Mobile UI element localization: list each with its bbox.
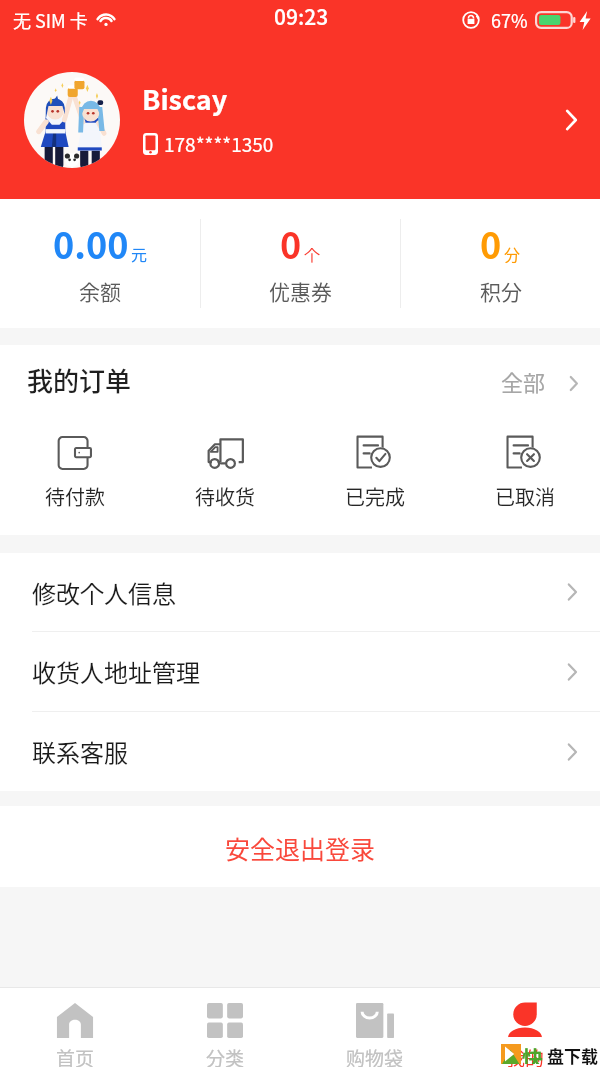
staticText: 分类 [206,1044,245,1067]
staticText: 无 SIM 卡 [13,7,88,33]
button[interactable]: 我的 [450,988,600,1067]
staticText: 优惠券 [269,276,332,306]
staticText: 安全退出登录 [225,830,376,866]
button[interactable]: 已取消 [450,415,600,511]
button[interactable]: 0.00 [0,199,200,328]
button[interactable]: 修改个人信息 [0,553,600,631]
button[interactable]: 全部 [491,356,600,404]
button[interactable]: 已完成 [300,415,450,511]
staticText: 盘下载 [547,1043,598,1065]
staticText: Biscay [142,79,228,118]
staticText: 待收货 [195,482,255,511]
staticText: 修改个人信息 [32,575,176,610]
staticText: 分 [504,242,521,265]
staticText: 购物袋 [346,1044,404,1067]
staticText: 178****1350 [164,130,274,158]
button[interactable]: 分类 [150,988,300,1067]
staticText: 09:23 [274,1,329,31]
staticText: 67% [491,7,528,33]
staticText: 0 [480,217,502,269]
staticText: 我的订单 [27,361,132,399]
staticText: 0.00 [53,217,129,269]
button[interactable]: 待付款 [0,415,150,511]
button[interactable]: 待收货 [150,415,300,511]
button[interactable]: Biscay [0,40,600,199]
staticText: 我的 [506,1044,545,1067]
staticText: 收货人地址管理 [32,654,200,689]
staticText: 全部 [501,365,546,397]
button[interactable]: 首页 [0,988,150,1067]
staticText: 待付款 [45,482,105,511]
staticText: 快 [522,1042,543,1064]
button[interactable]: 收货人地址管理 [0,632,600,711]
staticText: 余额 [79,276,121,306]
staticText: 联系客服 [32,734,128,769]
button[interactable]: 联系客服 [0,712,600,791]
staticText: 元 [131,242,148,265]
button[interactable]: 购物袋 [300,988,450,1067]
button[interactable]: Account details [554,103,588,137]
button[interactable]: 0 [401,199,600,328]
staticText: 积分 [480,276,522,306]
button[interactable]: 安全退出登录 [0,806,600,887]
staticText: 已完成 [345,482,405,511]
staticText: 个 [304,242,321,265]
staticText: 0 [280,217,302,269]
button[interactable]: 0 [201,199,400,328]
staticText: 已取消 [495,482,555,511]
staticText: 首页 [56,1044,95,1067]
